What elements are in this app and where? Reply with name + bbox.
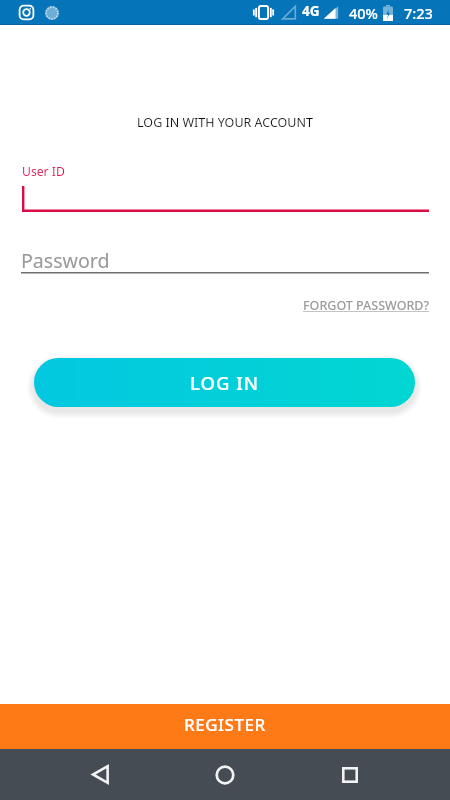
staticText: 4G — [302, 2, 320, 20]
button[interactable]: Back — [75, 749, 125, 800]
staticText: User ID — [22, 163, 65, 180]
staticText: 40% — [349, 3, 378, 23]
button[interactable]: REGISTER — [0, 704, 450, 749]
staticText: REGISTER — [184, 713, 266, 736]
button[interactable]: User ID — [21, 160, 430, 212]
button[interactable]: Password — [21, 242, 430, 274]
staticText: 7:23 — [404, 3, 433, 23]
staticText: Password — [21, 247, 110, 274]
staticText: FORGOT PASSWORD? — [303, 297, 430, 314]
button[interactable]: Home — [200, 749, 250, 800]
staticText: LOG IN WITH YOUR ACCOUNT — [0, 114, 450, 131]
staticText: LOG IN — [190, 370, 260, 395]
button[interactable]: LOG IN — [34, 358, 415, 407]
button[interactable]: FORGOT PASSWORD? — [303, 297, 430, 314]
button[interactable]: Recent apps — [325, 749, 375, 800]
